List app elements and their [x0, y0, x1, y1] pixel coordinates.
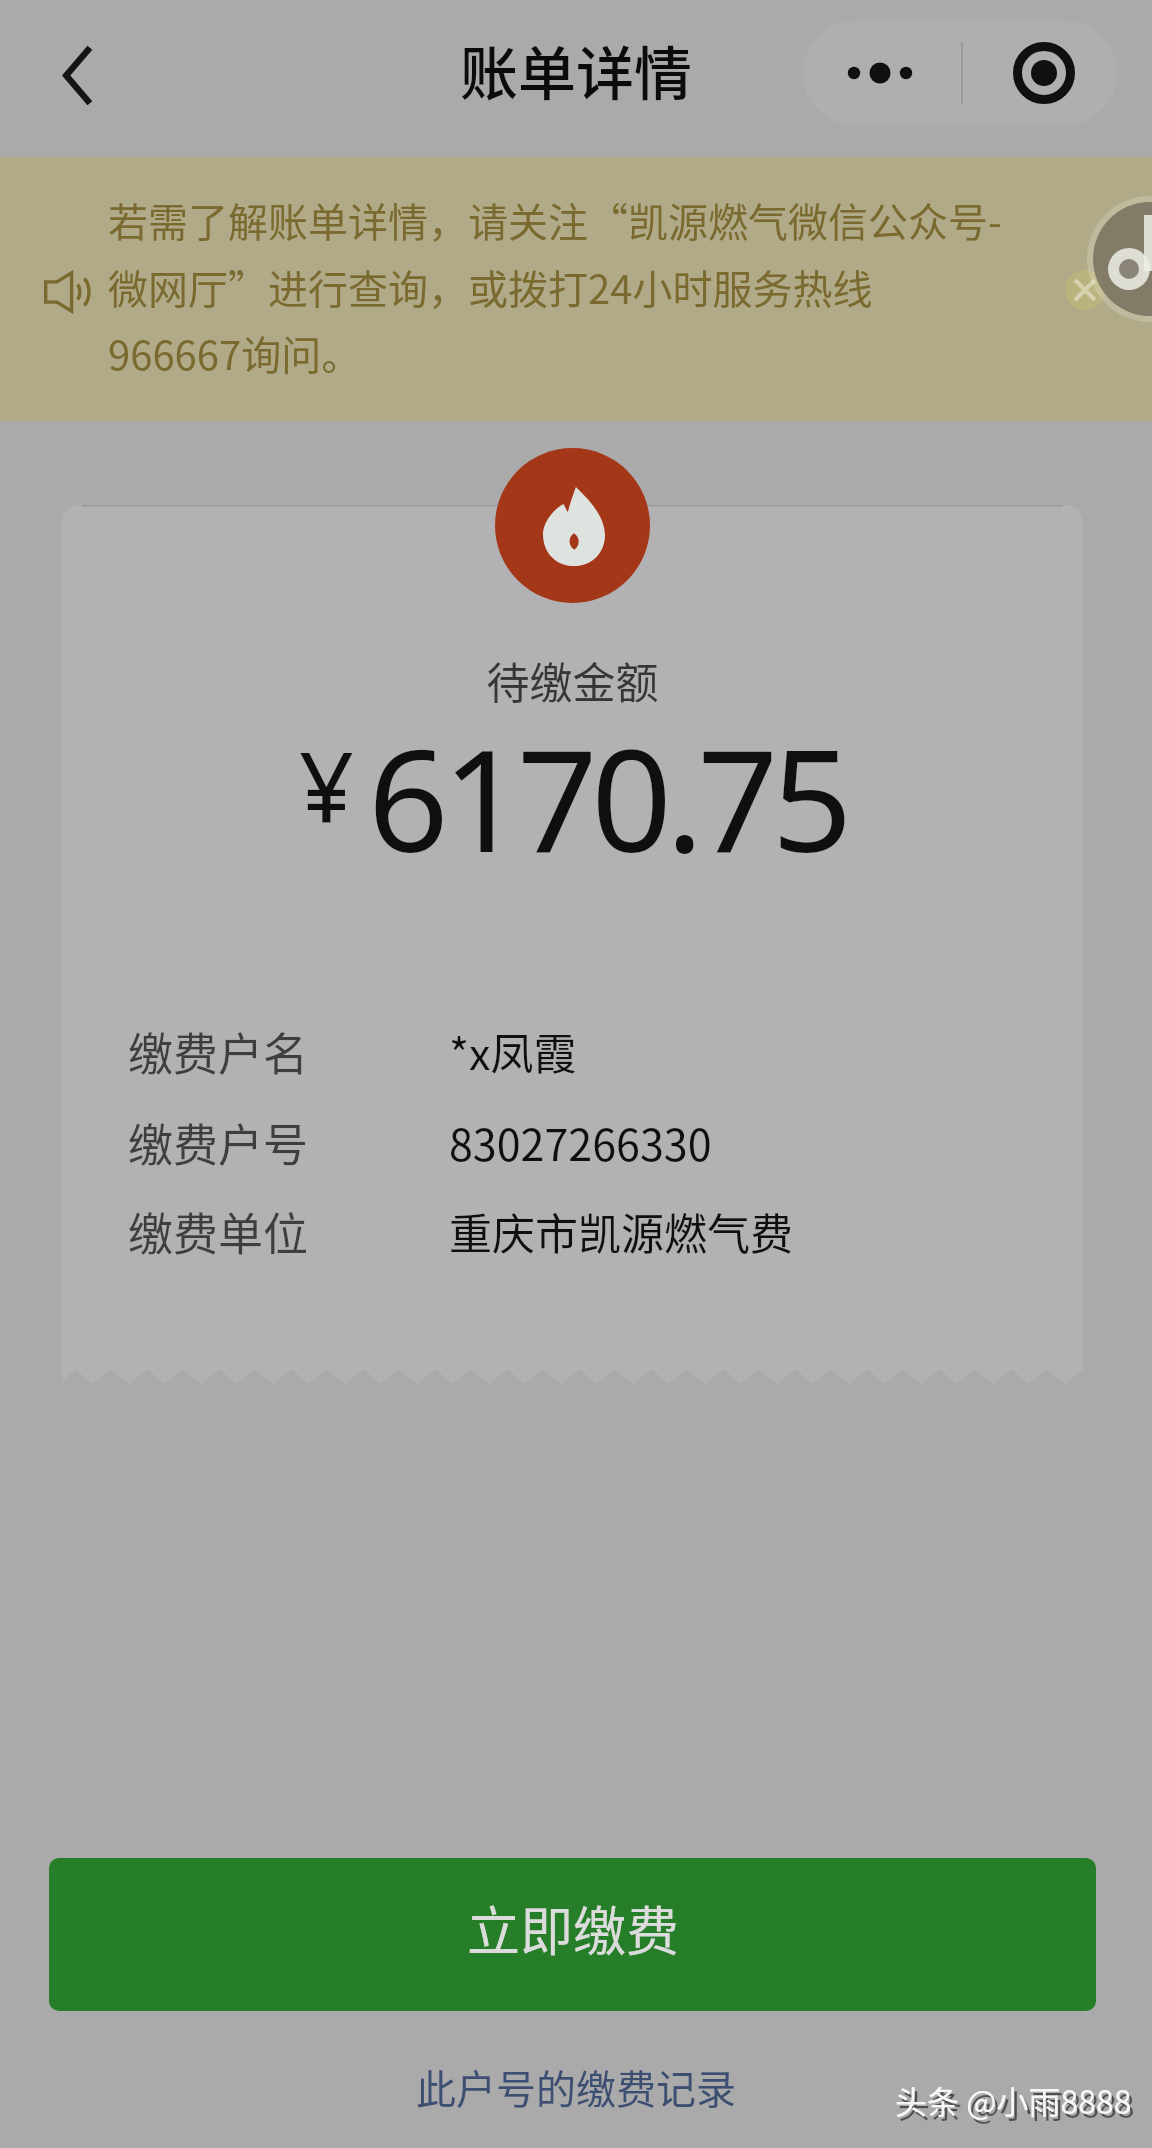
- button[interactable]: 缴费单位: [62, 1194, 1083, 1268]
- staticText: 6170.75: [368, 701, 847, 893]
- staticText: 账单详情: [0, 28, 1152, 112]
- staticText: 若需了解账单详情，请关注“凯源燃气微信公众号-微网厅”进行查询，或拨打24小时服…: [108, 191, 1004, 381]
- button[interactable]: More: [803, 21, 961, 125]
- staticText: 头条 @小雨8888: [895, 2077, 1132, 2123]
- staticText: 重庆市凯源燃气费: [449, 1200, 793, 1262]
- staticText: ¥: [299, 720, 354, 851]
- staticText: 立即缴费: [467, 1890, 679, 1967]
- button[interactable]: Back: [41, 29, 113, 121]
- button[interactable]: 缴费户名: [62, 1014, 1083, 1088]
- button[interactable]: 此户号的缴费记录: [366, 2047, 786, 2127]
- staticText: 头条 @小雨8888: [898, 2081, 1135, 2127]
- button[interactable]: 立即缴费: [49, 1858, 1096, 2011]
- staticText: 83027266330: [449, 1111, 712, 1173]
- button[interactable]: Close mini program: [963, 21, 1117, 125]
- staticText: 此户号的缴费记录: [416, 2058, 736, 2116]
- button[interactable]: 缴费户号: [62, 1105, 1083, 1179]
- staticText: 缴费户名: [128, 1019, 309, 1084]
- other: Gas provider logo: [495, 448, 650, 603]
- staticText: 缴费单位: [128, 1199, 309, 1264]
- staticText: 缴费户号: [128, 1110, 309, 1175]
- staticText: *x凤霞: [449, 1020, 577, 1082]
- staticText: 待缴金额: [62, 649, 1083, 711]
